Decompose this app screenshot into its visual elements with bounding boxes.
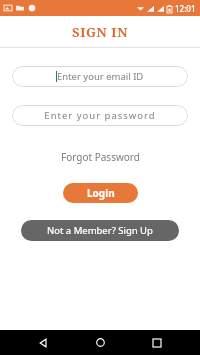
staticText: Forgot Password — [61, 150, 140, 164]
button[interactable]: Recent apps — [143, 330, 171, 355]
button[interactable]: Forgot Password — [57, 148, 144, 166]
staticText: 12:01 — [175, 3, 196, 14]
button[interactable]: Back — [29, 330, 57, 355]
button[interactable]: Home — [86, 330, 114, 355]
staticText: Not a Member? Sign Up — [47, 224, 153, 237]
staticText: Enter your password — [44, 109, 156, 122]
staticText: Enter your email ID — [57, 70, 144, 83]
staticText: SIGN IN — [72, 23, 129, 41]
button[interactable]: Not a Member? Sign Up — [21, 220, 179, 241]
staticText: Login — [87, 186, 115, 200]
button[interactable]: Enter your email ID — [12, 66, 188, 87]
button[interactable]: Enter your password — [12, 105, 188, 126]
button[interactable]: Login — [63, 183, 138, 203]
